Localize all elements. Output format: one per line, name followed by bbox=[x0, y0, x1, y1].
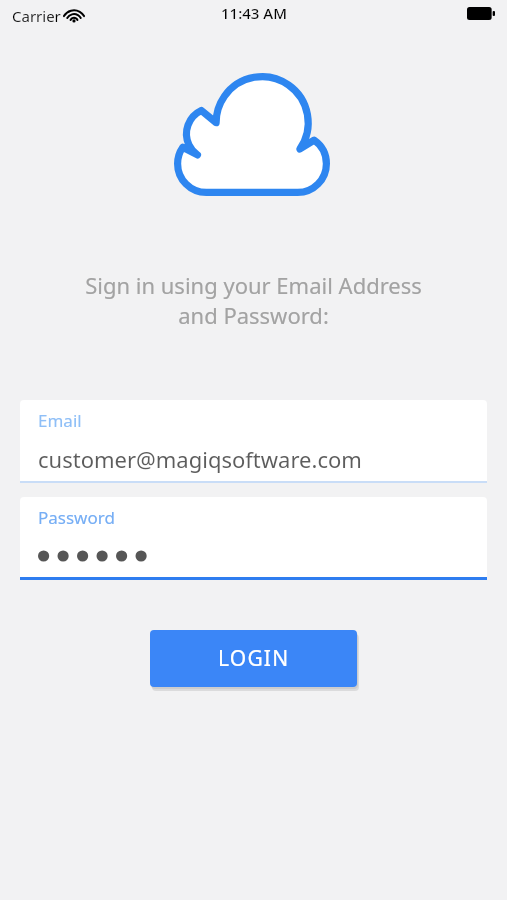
staticText: Carrier bbox=[12, 6, 61, 26]
button[interactable]: Email bbox=[20, 400, 487, 483]
staticText: customer@magiqsoftware.com bbox=[38, 444, 362, 474]
button[interactable]: LOGIN bbox=[150, 630, 357, 687]
staticText: LOGIN bbox=[218, 644, 290, 673]
staticText: Email bbox=[38, 409, 82, 432]
staticText: Password bbox=[38, 506, 115, 529]
staticText: 11:43 AM bbox=[221, 3, 287, 23]
button[interactable]: Password bbox=[20, 497, 487, 580]
staticText: Sign in using your Email Address and Pas… bbox=[40, 270, 467, 330]
